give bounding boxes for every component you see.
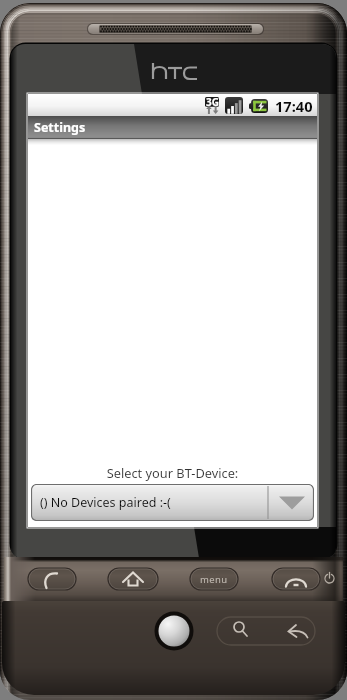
button[interactable]: Back <box>266 617 315 645</box>
staticText: 17:40 <box>275 96 313 116</box>
staticText: () No Devices paired :-( <box>40 494 171 511</box>
staticText: Settings <box>34 119 86 136</box>
button[interactable]: End call <box>272 568 320 590</box>
button[interactable]: Call <box>28 568 76 590</box>
button[interactable]: menu <box>190 568 238 590</box>
staticText: 3G <box>206 95 219 109</box>
button[interactable]: Search <box>217 617 266 645</box>
button[interactable]: () No Devices paired :-( <box>31 484 314 521</box>
button[interactable]: Home <box>108 568 158 590</box>
staticText: Select your BT-Device: <box>28 464 317 481</box>
staticText: menu <box>200 573 228 586</box>
